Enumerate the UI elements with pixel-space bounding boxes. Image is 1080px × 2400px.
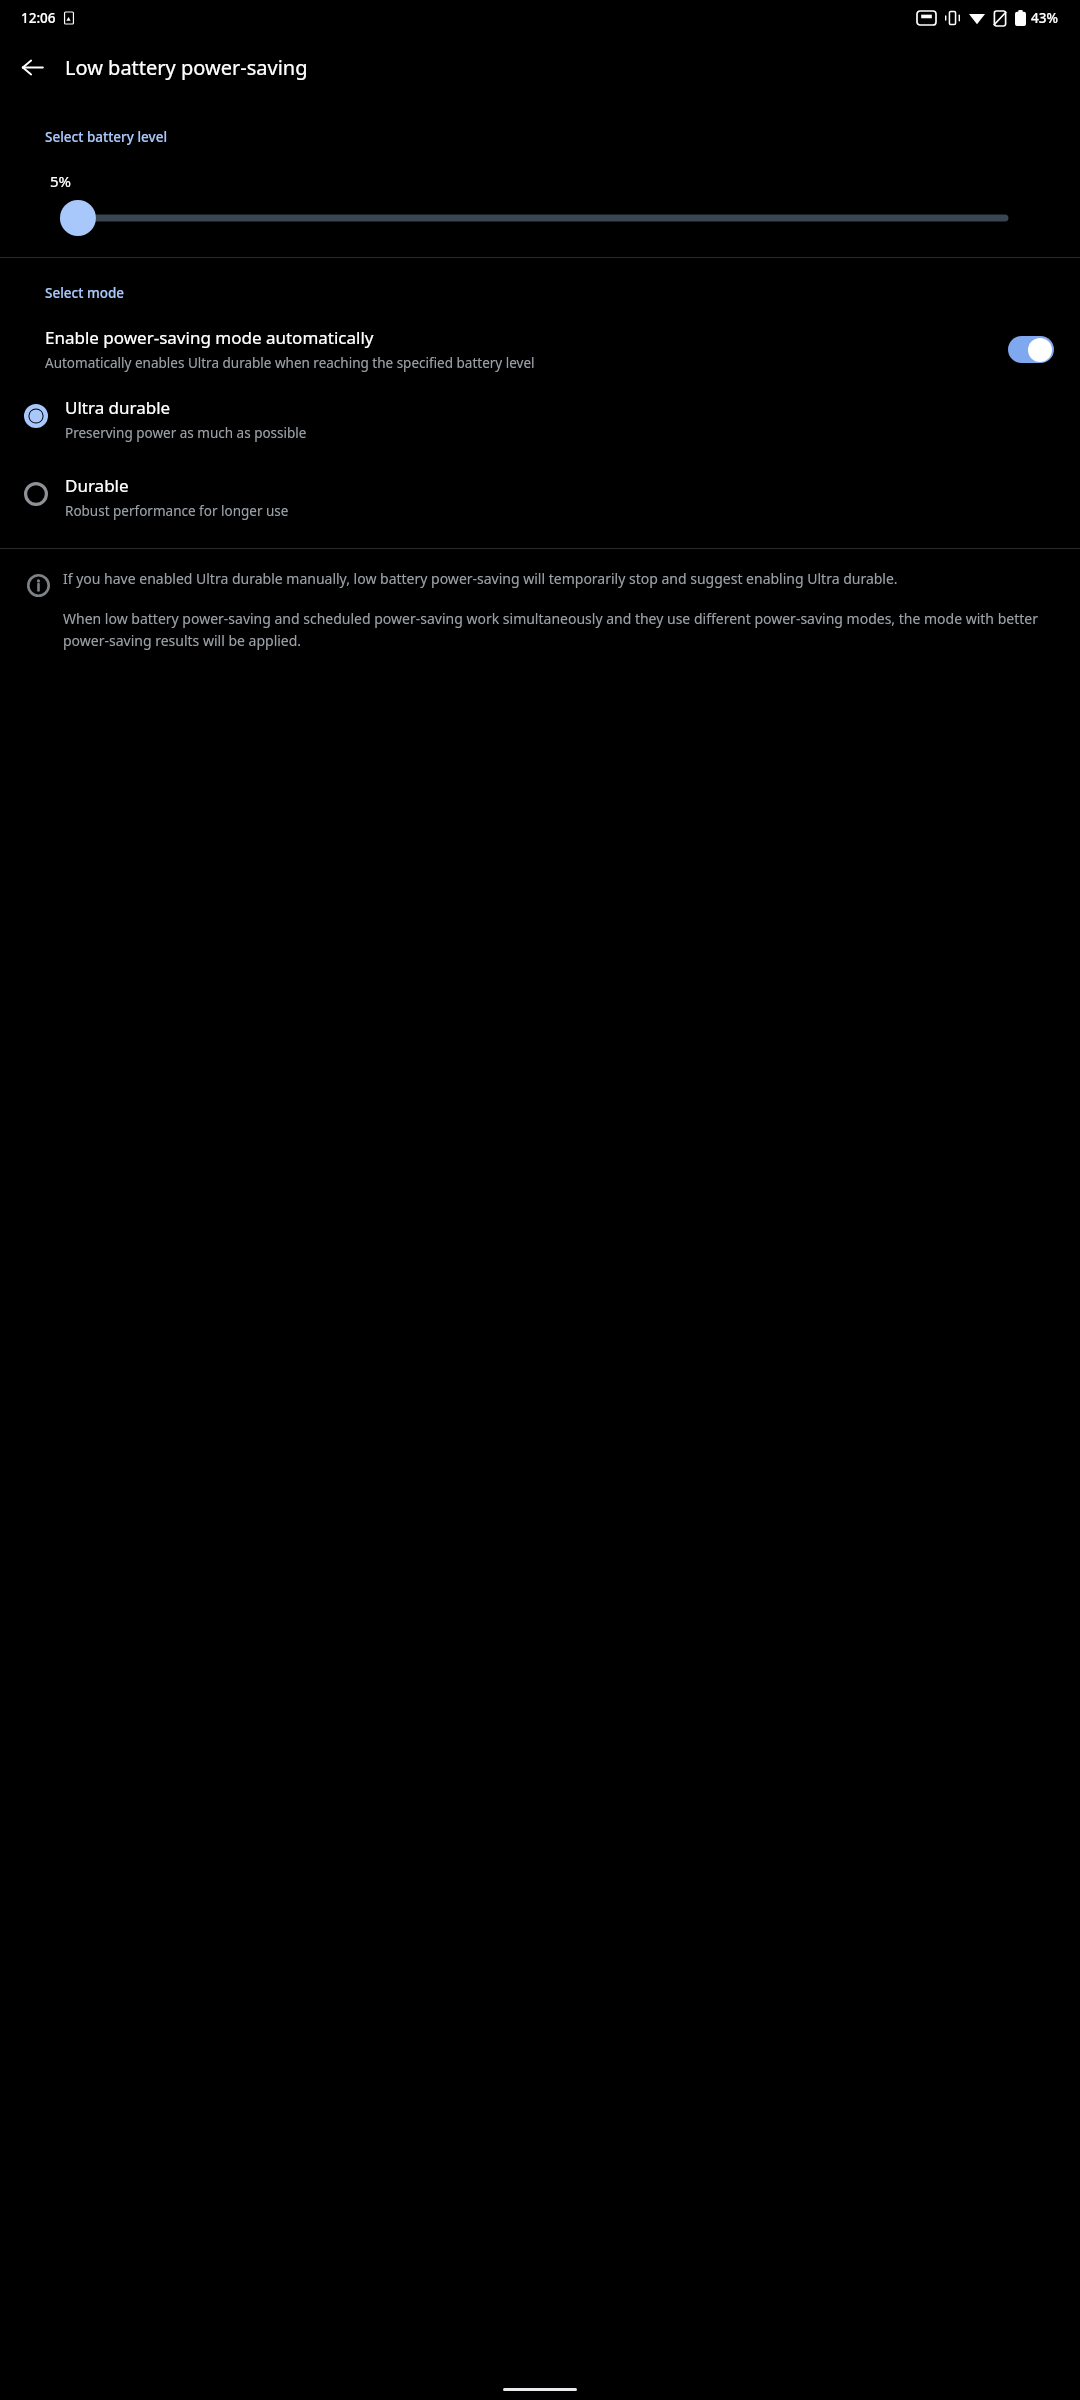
button[interactable]: Ultra durable xyxy=(0,390,1080,448)
staticText: Enable power-saving mode automatically xyxy=(45,326,374,349)
staticText: Low battery power-saving xyxy=(65,54,308,81)
staticText: When low battery power-saving and schedu… xyxy=(63,609,1058,650)
staticText: Select battery level xyxy=(45,128,168,146)
button[interactable]: Durable xyxy=(0,468,1080,526)
staticText: 5% xyxy=(50,171,72,191)
button[interactable]: Back xyxy=(8,43,56,91)
button[interactable]: Enable power-saving mode automatically xyxy=(0,318,1080,380)
staticText: Automatically enables Ultra durable when… xyxy=(45,354,535,372)
staticText: Ultra durable xyxy=(65,396,171,419)
staticText: Robust performance for longer use xyxy=(65,502,289,520)
staticText: Preserving power as much as possible xyxy=(65,424,307,442)
staticText: 43% xyxy=(1031,9,1058,27)
staticText: Select mode xyxy=(45,284,125,302)
staticText: 12:06 xyxy=(21,9,56,27)
staticText: If you have enabled Ultra durable manual… xyxy=(63,569,898,588)
staticText: Durable xyxy=(65,474,129,497)
button[interactable]: Battery level slider xyxy=(0,205,1080,231)
